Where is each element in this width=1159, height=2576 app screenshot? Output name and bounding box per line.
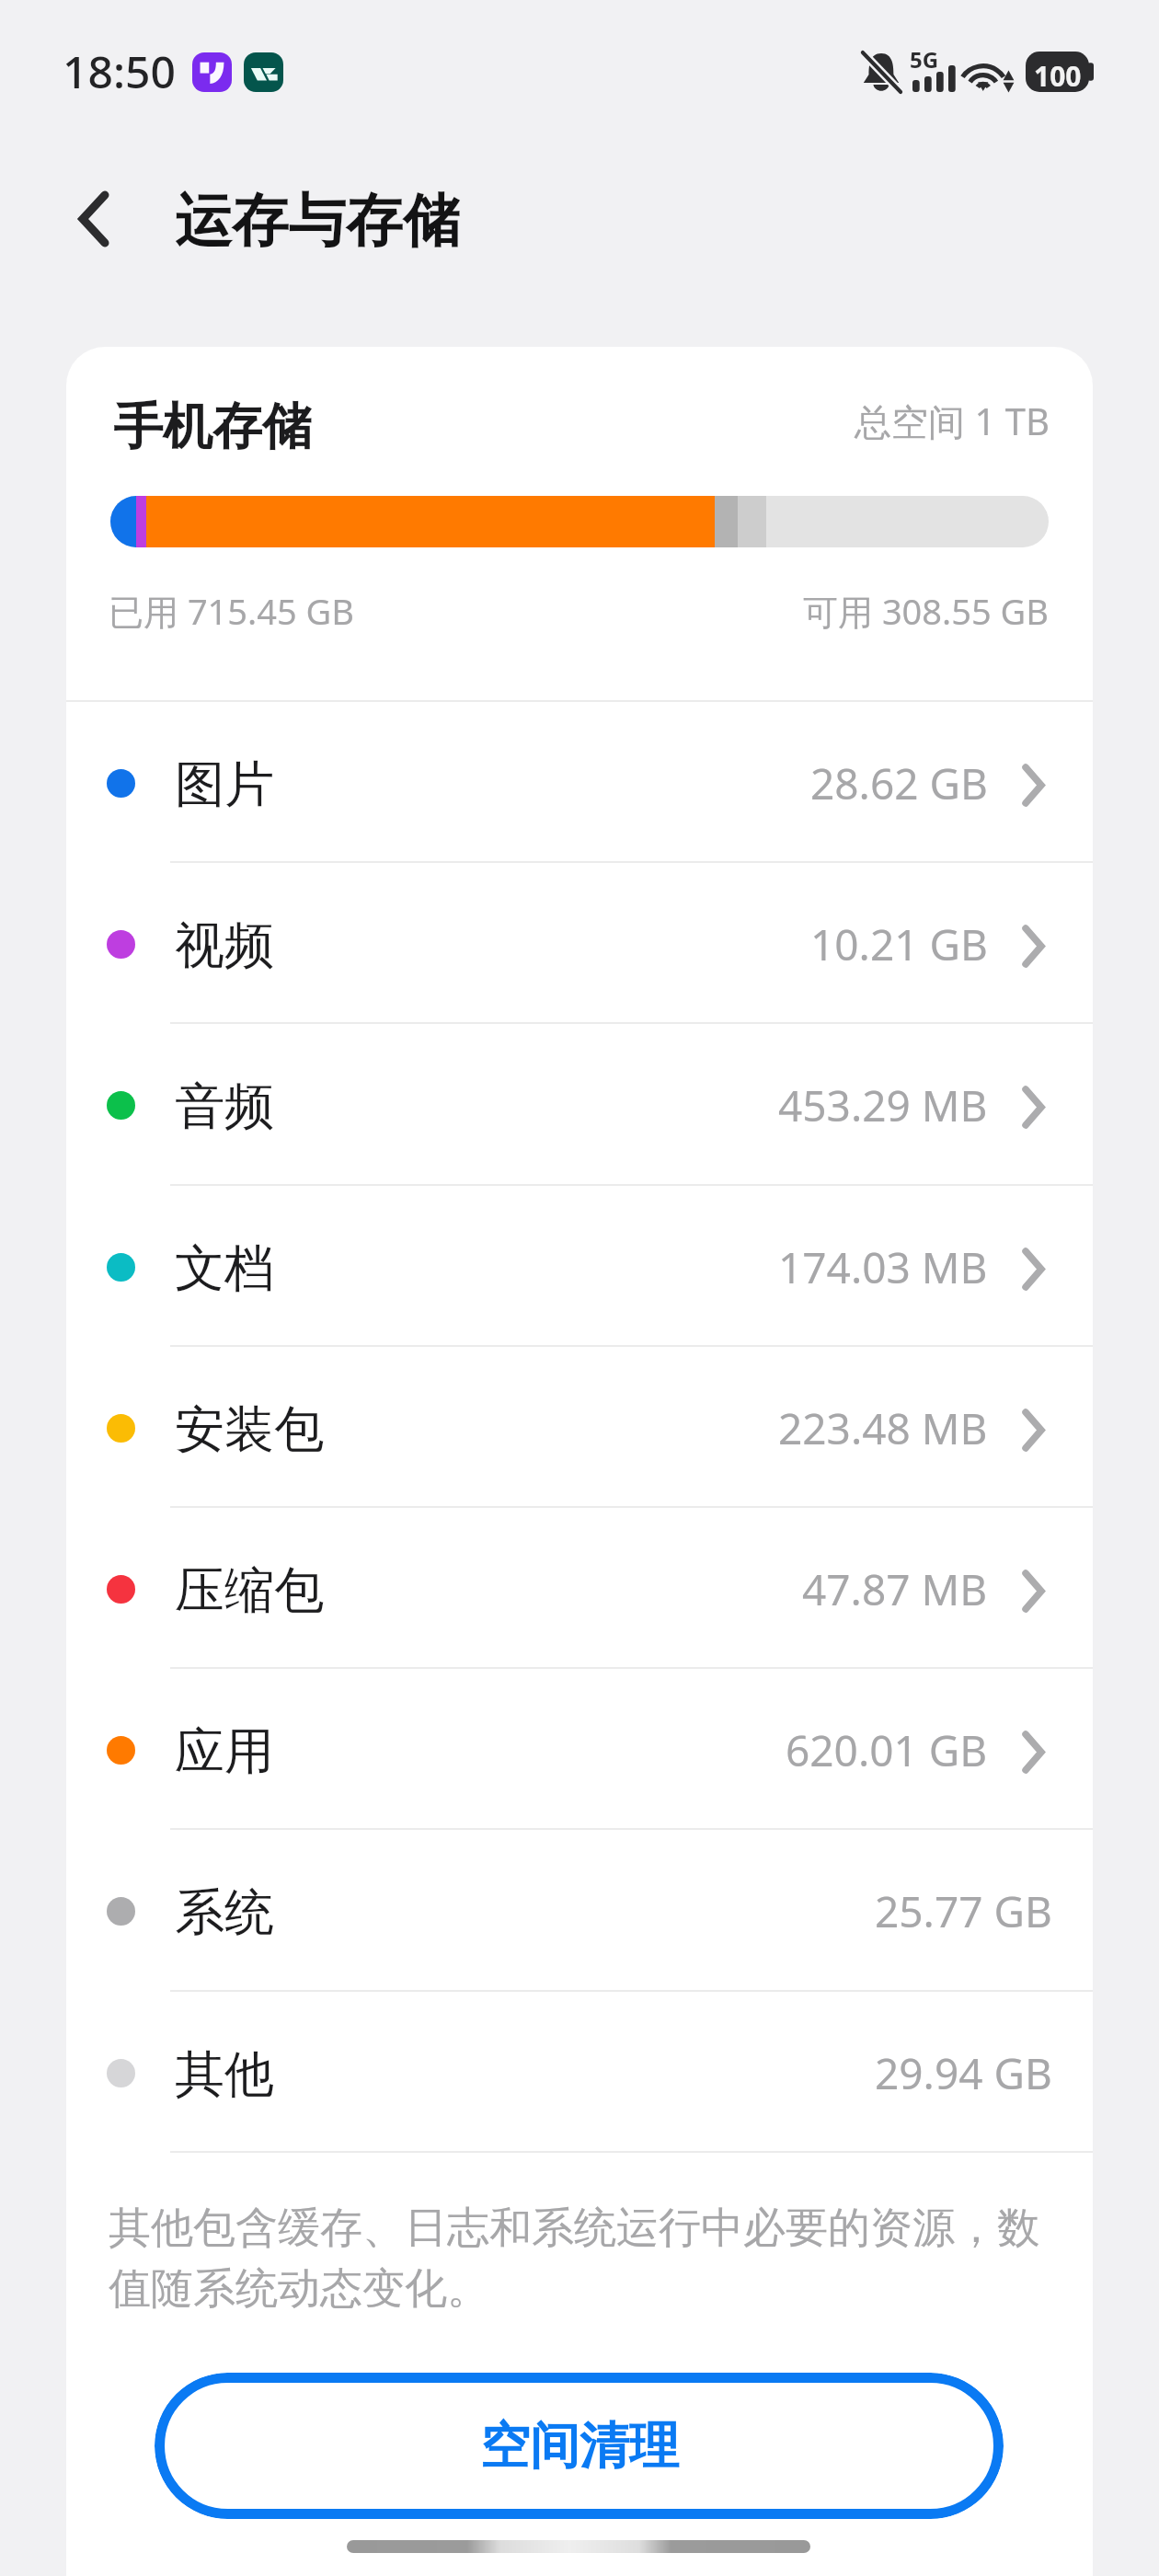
button[interactable]: 压缩包 xyxy=(66,1506,1093,1667)
staticText: 系统 xyxy=(175,1881,274,1944)
button[interactable]: 音频 xyxy=(66,1022,1093,1183)
staticText: 5G xyxy=(910,44,939,75)
staticText: 223.48 MB xyxy=(778,1399,988,1457)
staticText: 总空间 1 TB xyxy=(855,396,1050,446)
staticText: 47.87 MB xyxy=(802,1560,988,1618)
staticText: 25.77 GB xyxy=(875,1882,1052,1940)
button[interactable]: 安装包 xyxy=(66,1345,1093,1506)
staticText: 已用 715.45 GB xyxy=(109,587,354,635)
staticText: 28.62 GB xyxy=(810,754,988,812)
button[interactable]: 视频 xyxy=(66,861,1093,1022)
button[interactable]: 其他 xyxy=(66,1990,1093,2151)
staticText: 29.94 GB xyxy=(875,2044,1052,2102)
button[interactable]: 系统 xyxy=(66,1828,1093,1989)
staticText: 100 xyxy=(1034,57,1082,95)
staticText: 文档 xyxy=(175,1237,274,1300)
staticText: 音频 xyxy=(175,1075,274,1138)
staticText: 其他包含缓存、日志和系统运行中必要的资源，数值随系统动态变化。 xyxy=(109,2202,1049,2316)
staticText: 18:50 xyxy=(63,41,176,101)
staticText: 手机存储 xyxy=(113,396,312,458)
staticText: 运存与存储 xyxy=(175,185,460,257)
staticText: 安装包 xyxy=(175,1398,324,1461)
staticText: 453.29 MB xyxy=(778,1076,988,1134)
staticText: 应用 xyxy=(175,1720,274,1783)
button[interactable]: 空间清理 xyxy=(155,2373,1004,2519)
button[interactable]: 应用 xyxy=(66,1667,1093,1828)
staticText: 其他 xyxy=(175,2043,274,2106)
staticText: 620.01 GB xyxy=(786,1721,988,1779)
staticText: 图片 xyxy=(175,753,274,816)
staticText: 空间清理 xyxy=(480,2415,679,2478)
staticText: 174.03 MB xyxy=(778,1238,988,1296)
staticText: 可用 308.55 GB xyxy=(803,587,1049,635)
button[interactable]: 返回 xyxy=(46,180,123,258)
button[interactable]: 图片 xyxy=(66,700,1093,861)
staticText: 压缩包 xyxy=(175,1559,324,1622)
staticText: 视频 xyxy=(175,914,274,977)
staticText: 10.21 GB xyxy=(810,915,988,973)
button[interactable]: 文档 xyxy=(66,1184,1093,1345)
